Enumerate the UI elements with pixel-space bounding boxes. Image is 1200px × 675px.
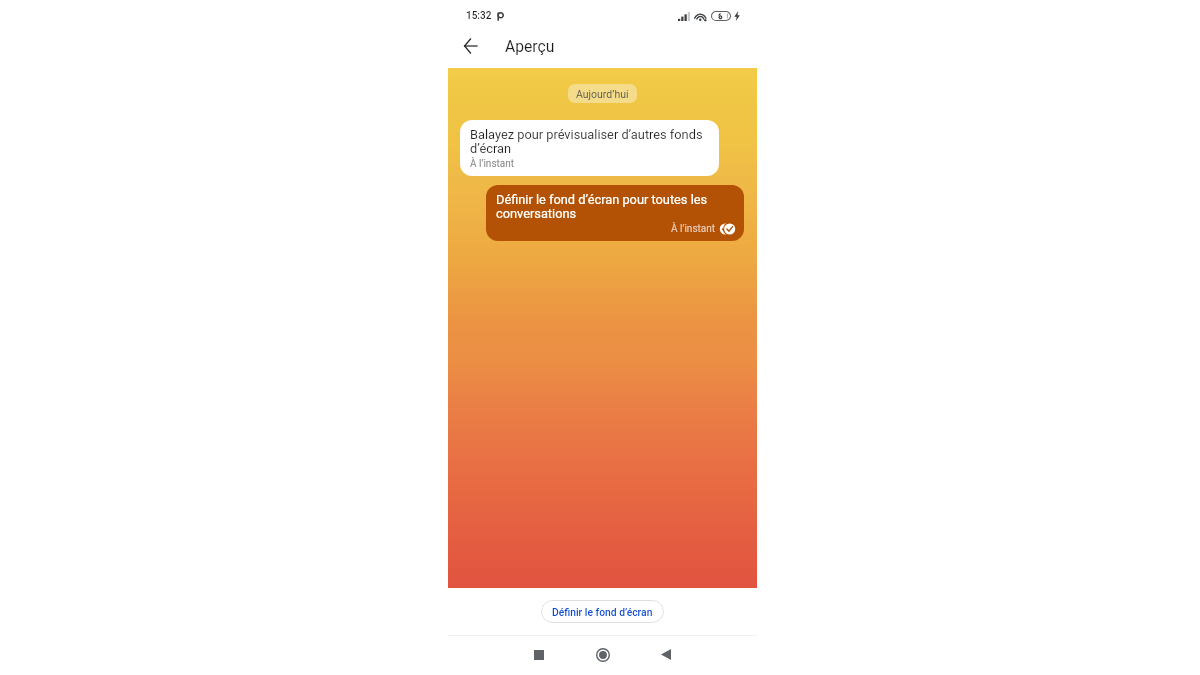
button[interactable]: Back [455, 31, 485, 61]
button[interactable]: Home [578, 635, 628, 674]
staticText: Aujourd’hui [576, 88, 629, 100]
staticText: À l’instant [470, 158, 515, 170]
button[interactable]: Définir le fond d’écran [541, 600, 664, 623]
staticText: Balayez pour prévisualiser d’autres fond… [470, 127, 710, 156]
button[interactable]: Back [641, 635, 691, 674]
staticText: Définir le fond d’écran pour toutes les … [496, 192, 735, 221]
staticText: 15:32 [466, 10, 492, 22]
staticText: Aperçu [505, 37, 555, 55]
button[interactable]: Recent apps [514, 635, 564, 674]
button[interactable]: Balayez pour prévisualiser d’autres fond… [460, 120, 719, 176]
staticText: À l’instant [671, 223, 716, 235]
button[interactable]: Aujourd’hui [568, 84, 637, 103]
button[interactable]: Définir le fond d’écran pour toutes les … [486, 185, 744, 241]
staticText: Définir le fond d’écran [552, 606, 653, 618]
